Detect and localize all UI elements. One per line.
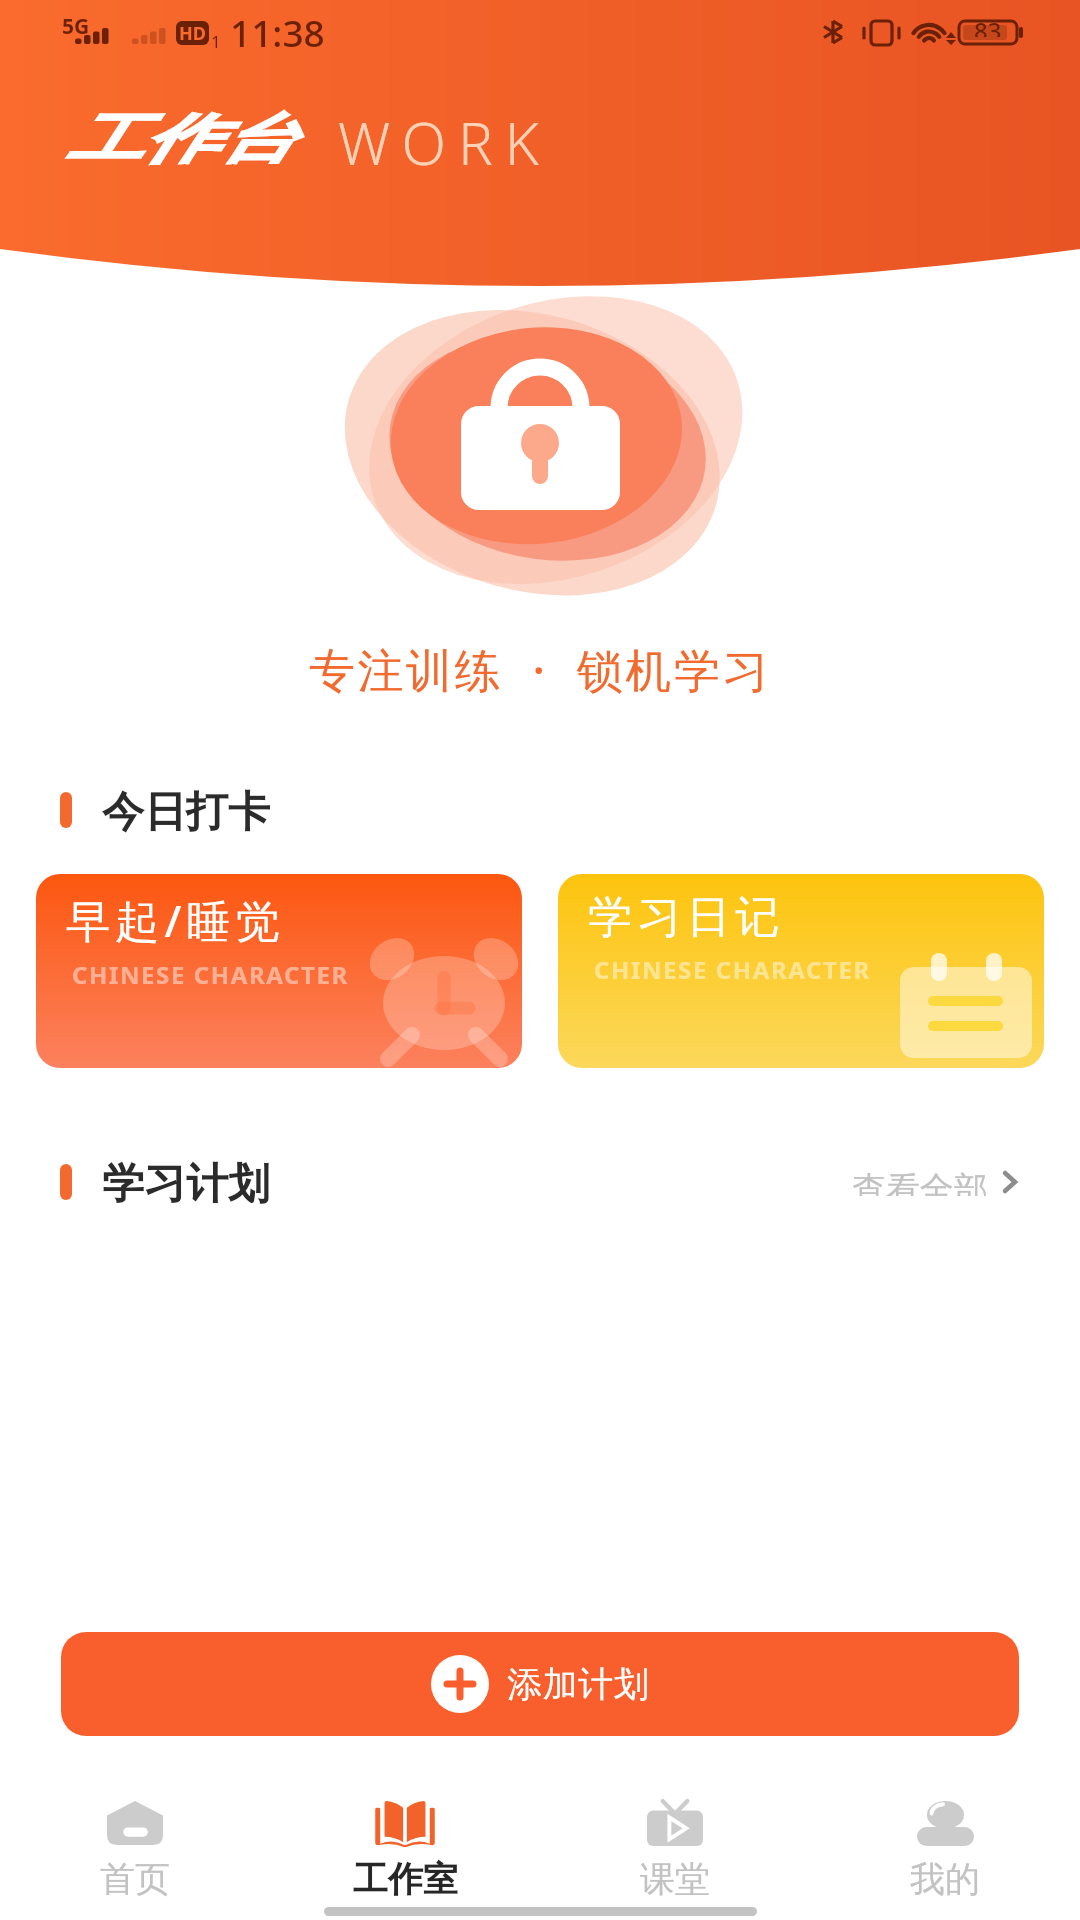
staticText: 工作台	[67, 106, 296, 172]
staticText: 查看全部	[852, 1168, 988, 1196]
button[interactable]: Profile	[810, 1760, 1080, 1910]
staticText: 早起/睡觉	[66, 890, 285, 950]
button[interactable]: 学习日记	[558, 874, 1044, 1068]
staticText: 1	[211, 30, 221, 53]
button[interactable]: 早起/睡觉	[36, 874, 522, 1068]
staticText: WORK	[338, 103, 551, 182]
button[interactable]: 添加计划	[61, 1632, 1019, 1736]
staticText: 83	[974, 14, 1002, 37]
staticText: 今日打卡	[102, 786, 270, 834]
staticText: 11:38	[230, 7, 325, 57]
staticText: CHINESE CHARACTER	[72, 958, 349, 991]
button[interactable]: Workshop	[270, 1760, 540, 1910]
staticText: 课堂	[640, 1857, 710, 1901]
staticText: 工作室	[353, 1857, 458, 1901]
staticText: 我的	[910, 1857, 980, 1901]
staticText: 学习日记	[588, 890, 785, 945]
button[interactable]: Home	[0, 1760, 270, 1910]
staticText: 首页	[100, 1857, 170, 1901]
button[interactable]: Classroom	[540, 1760, 810, 1910]
staticText: CHINESE CHARACTER	[594, 953, 871, 986]
staticText: 专注训练 · 锁机学习	[0, 638, 1080, 701]
staticText: 学习计划	[102, 1158, 270, 1206]
staticText: 添加计划	[507, 1662, 649, 1706]
staticText: 5G	[62, 12, 90, 41]
staticText: HD	[179, 21, 206, 45]
button[interactable]: 查看全部	[846, 1158, 1024, 1206]
